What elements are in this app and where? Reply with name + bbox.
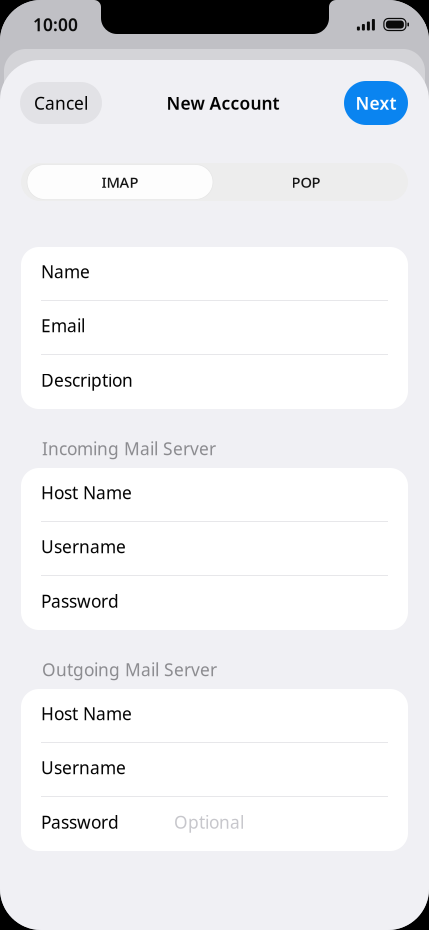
button[interactable]: Password — [21, 797, 408, 851]
button[interactable]: Name — [21, 247, 408, 300]
staticText: Username — [41, 535, 126, 558]
staticText: IMAP — [101, 172, 138, 192]
button[interactable]: Password — [21, 576, 408, 630]
staticText: Host Name — [41, 481, 132, 504]
staticText: Next — [355, 91, 396, 114]
staticText: Name — [41, 260, 90, 283]
button[interactable]: POP — [213, 164, 399, 199]
staticText: Optional — [174, 810, 244, 833]
staticText: Incoming Mail Server — [42, 437, 216, 460]
button[interactable]: Next — [344, 81, 408, 125]
staticText: Outgoing Mail Server — [42, 658, 217, 681]
button[interactable]: Cancel — [20, 82, 102, 124]
staticText: Password — [41, 589, 119, 612]
button[interactable]: Username — [21, 743, 408, 796]
staticText: POP — [291, 172, 320, 192]
button[interactable]: Username — [21, 522, 408, 575]
button[interactable]: Email — [21, 301, 408, 354]
staticText: Description — [41, 368, 133, 391]
staticText: Password — [41, 810, 119, 833]
button[interactable]: Host Name — [21, 689, 408, 742]
button[interactable]: Host Name — [21, 468, 408, 521]
staticText: Email — [41, 314, 85, 337]
staticText: Cancel — [34, 91, 88, 114]
staticText: 10:00 — [33, 13, 78, 36]
staticText: Username — [41, 756, 126, 779]
staticText: New Account — [166, 91, 279, 114]
button[interactable]: Description — [21, 355, 408, 409]
staticText: Host Name — [41, 702, 132, 725]
button[interactable]: IMAP — [27, 164, 213, 199]
